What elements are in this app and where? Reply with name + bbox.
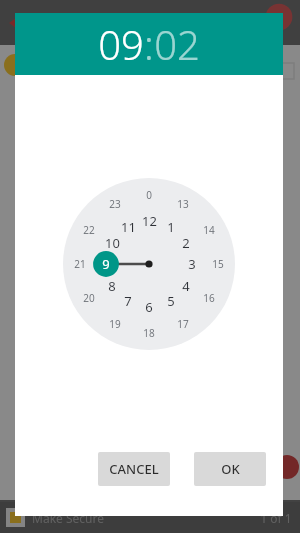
button[interactable]: 09 (98, 17, 144, 71)
button[interactable]: 10 (101, 232, 123, 254)
button[interactable]: 5 (160, 290, 182, 312)
staticText: 7 (124, 292, 132, 310)
button[interactable]: 19 (104, 313, 126, 335)
other: Back (6, 10, 32, 36)
button[interactable]: 22 (78, 219, 100, 241)
staticText: 1 (167, 218, 175, 236)
staticText: 1 of 1 (260, 510, 292, 526)
button[interactable]: 14 (198, 219, 220, 241)
staticText: 19 (109, 317, 121, 331)
staticText: 16 (203, 291, 215, 305)
staticText: 6 (145, 298, 153, 316)
button[interactable]: 21 (69, 253, 91, 275)
button[interactable]: 18 (138, 322, 160, 344)
staticText: 3 (188, 255, 196, 273)
button[interactable]: 20 (78, 287, 100, 309)
button[interactable]: 6 (138, 296, 160, 318)
button[interactable]: 16 (198, 287, 220, 309)
staticText: 12 (142, 212, 157, 230)
staticText: 17 (177, 317, 189, 331)
button[interactable]: 0 (138, 184, 160, 206)
button[interactable]: 8 (101, 275, 123, 297)
staticText: 18 (143, 326, 155, 340)
button[interactable]: OK (194, 452, 266, 486)
staticText: 4 (182, 277, 190, 295)
staticText: 14 (203, 223, 215, 237)
staticText: OK (221, 460, 240, 478)
staticText: 9 (102, 255, 110, 273)
button[interactable]: 12 (138, 210, 160, 232)
button[interactable]: 7 (117, 290, 139, 312)
staticText: 8 (108, 277, 116, 295)
staticText: 0 (146, 188, 152, 202)
staticText: 23 (109, 197, 121, 211)
staticText: 13 (177, 197, 189, 211)
button[interactable]: 15 (207, 253, 229, 275)
button[interactable]: 1 (160, 216, 182, 238)
button[interactable]: 02 (154, 17, 200, 71)
button[interactable]: CANCEL (98, 452, 170, 486)
staticText: : (144, 17, 154, 71)
staticText: 10 (105, 234, 120, 252)
staticText: Make Secure (32, 510, 104, 526)
staticText: CANCEL (109, 460, 159, 478)
staticText: 2 (182, 234, 190, 252)
button[interactable]: 13 (172, 193, 194, 215)
staticText: 11 (121, 218, 136, 236)
button[interactable]: 11 (117, 216, 139, 238)
staticText: 20 (83, 291, 95, 305)
staticText: 5 (167, 292, 175, 310)
staticText: 22 (83, 223, 95, 237)
button[interactable]: 17 (172, 313, 194, 335)
staticText: 21 (74, 257, 86, 271)
button[interactable]: 9 (95, 253, 117, 275)
button[interactable]: 23 (104, 193, 126, 215)
staticText: 15 (212, 257, 224, 271)
button[interactable]: 3 (181, 253, 203, 275)
button[interactable]: 2 (175, 232, 197, 254)
button[interactable]: 4 (175, 275, 197, 297)
